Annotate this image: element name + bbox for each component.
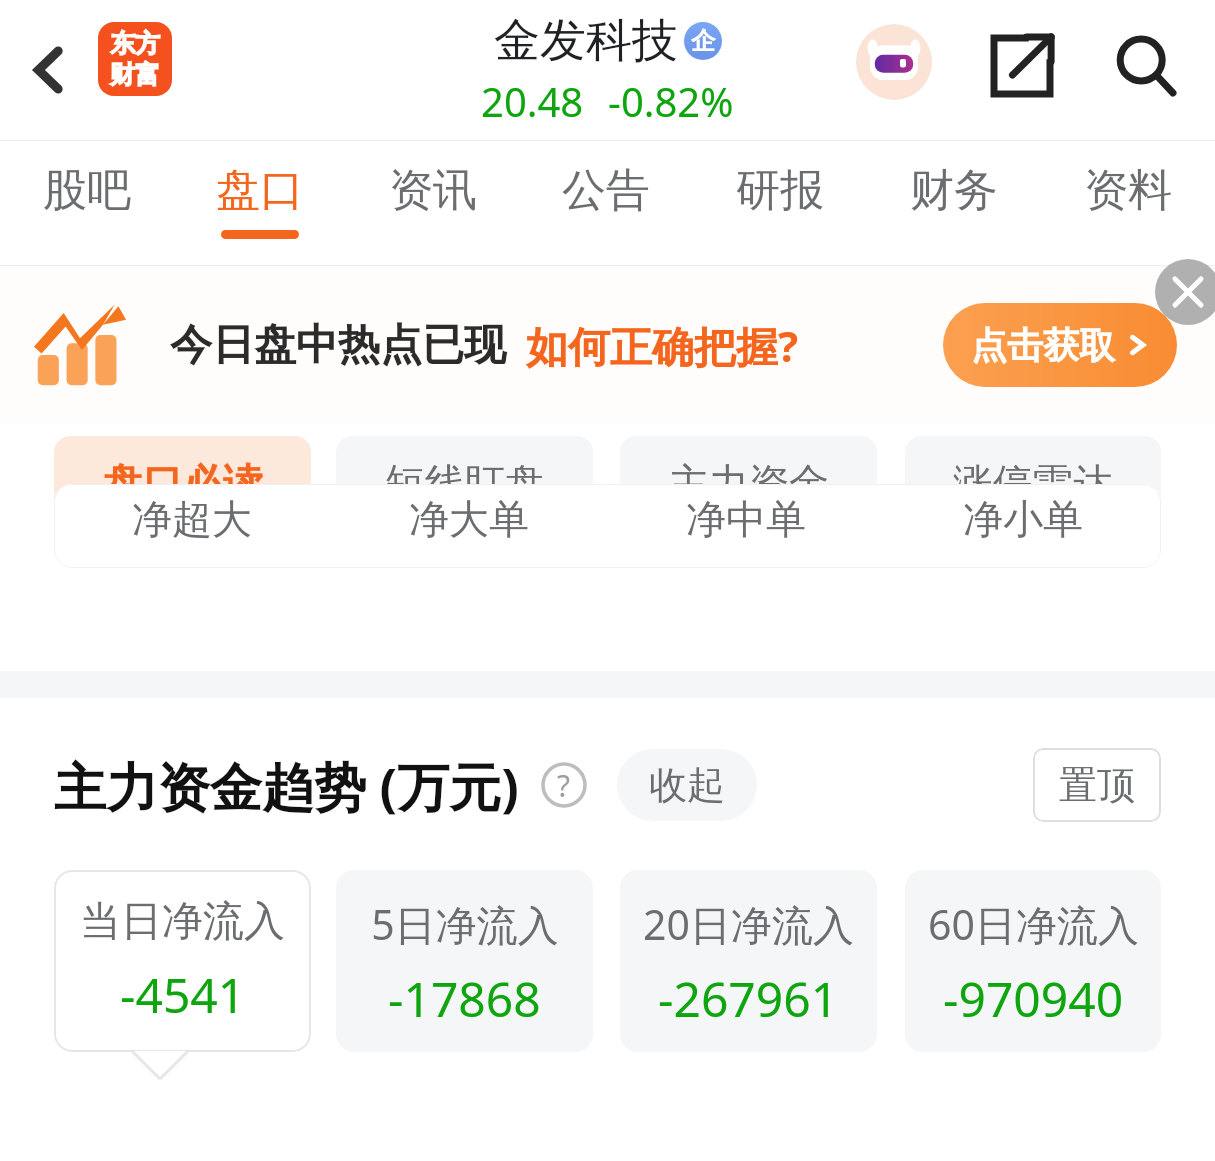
staticText: 盘口	[216, 163, 304, 218]
staticText: 主力资金趋势 (万元)	[54, 750, 519, 821]
button[interactable]: 20日净流入	[620, 870, 877, 1052]
button[interactable]: 当日净流入	[54, 870, 311, 1052]
button[interactable]: Help	[541, 762, 587, 808]
staticText: 涨停雷达	[953, 458, 1113, 508]
button[interactable]: 短线盯盘	[336, 436, 593, 530]
button[interactable]: 公告	[519, 141, 693, 265]
staticText: 净中单	[686, 494, 806, 544]
staticText: 60日净流入	[928, 896, 1139, 952]
staticText: -0.82%	[608, 74, 734, 128]
staticText: 资讯	[389, 163, 477, 218]
button[interactable]: 5日净流入	[336, 870, 593, 1052]
staticText: -267961	[658, 966, 839, 1031]
staticText: 财务	[910, 163, 998, 218]
staticText: -17868	[388, 966, 541, 1031]
staticText: 收起	[649, 761, 725, 809]
button[interactable]: AI Assistant	[856, 24, 932, 100]
staticText: 短线盯盘	[385, 458, 545, 508]
button[interactable]: 研报	[693, 141, 867, 265]
button[interactable]: Close	[1155, 259, 1215, 325]
button[interactable]: 资料	[1041, 141, 1215, 265]
staticText: 金发科技	[494, 12, 678, 70]
button[interactable]: 点击获取	[943, 303, 1177, 387]
staticText: 研报	[736, 163, 824, 218]
staticText: 资料	[1084, 163, 1172, 218]
button[interactable]: 盘口	[173, 141, 346, 265]
button[interactable]: 资讯	[346, 141, 519, 265]
staticText: 今日盘中热点已现	[170, 319, 506, 372]
button[interactable]: Search	[1106, 26, 1186, 106]
staticText: 企	[691, 26, 715, 56]
button[interactable]: East Money	[98, 22, 172, 96]
button[interactable]: 收起	[617, 749, 757, 821]
staticText: 点击获取	[971, 323, 1115, 368]
staticText: 东方	[110, 28, 160, 59]
button[interactable]: 盘口必读	[54, 436, 311, 530]
staticText: 置顶	[1059, 761, 1135, 809]
button[interactable]: Share	[982, 26, 1062, 106]
staticText: 20日净流入	[643, 896, 854, 952]
staticText: 股吧	[43, 163, 131, 218]
button[interactable]: 涨停雷达	[905, 436, 1161, 530]
button[interactable]: Back	[16, 36, 84, 104]
staticText: -970940	[943, 966, 1124, 1031]
staticText: 净超大	[132, 494, 252, 544]
button[interactable]: 财务	[867, 141, 1041, 265]
staticText: 如何正确把握?	[526, 317, 799, 374]
button[interactable]: 置顶	[1033, 748, 1161, 822]
staticText: 净小单	[963, 494, 1083, 544]
staticText: 公告	[562, 163, 650, 218]
staticText: 盘口必读	[103, 458, 263, 508]
staticText: 当日净流入	[80, 896, 285, 948]
staticText: 主力资金	[669, 458, 829, 508]
staticText: 净大单	[409, 494, 529, 544]
staticText: 财富	[110, 59, 160, 90]
staticText: 5日净流入	[371, 896, 559, 952]
staticText: ?	[557, 765, 571, 806]
button[interactable]: 主力资金	[620, 436, 877, 530]
button[interactable]: 60日净流入	[905, 870, 1161, 1052]
staticText: 20.48	[481, 74, 584, 128]
button[interactable]: 股吧	[0, 141, 173, 265]
staticText: -4541	[120, 962, 246, 1027]
